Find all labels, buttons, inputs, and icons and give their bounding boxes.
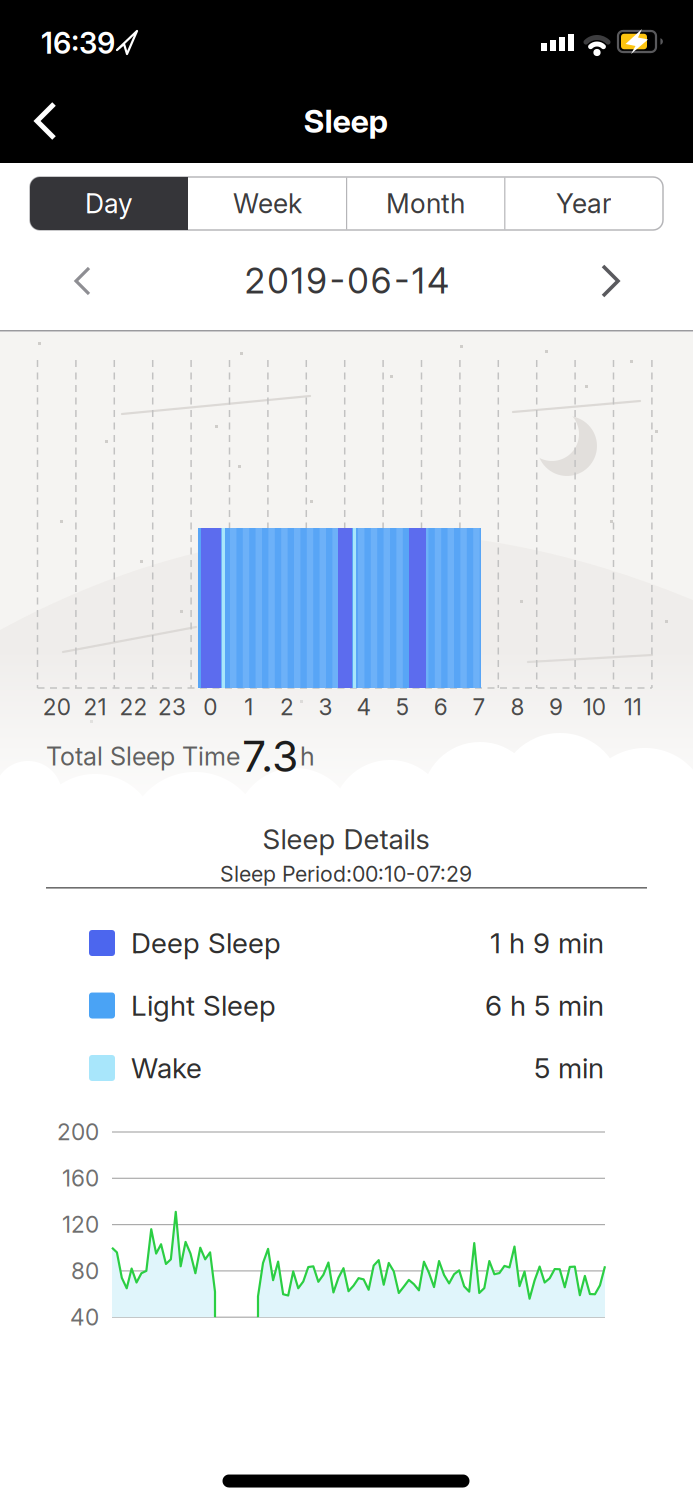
staticText: Light Sleep bbox=[131, 989, 276, 1022]
button[interactable]: Year bbox=[0, 0, 693, 1500]
button[interactable] bbox=[0, 0, 693, 1500]
staticText: 0 bbox=[203, 694, 217, 720]
staticText: h bbox=[300, 741, 315, 771]
staticText: 11 bbox=[624, 694, 642, 720]
staticText: Wake bbox=[131, 1051, 202, 1084]
button[interactable] bbox=[0, 0, 60, 163]
staticText: Deep Sleep bbox=[131, 926, 281, 959]
staticText: Sleep Details bbox=[262, 822, 429, 855]
staticText: 22 bbox=[119, 694, 147, 720]
staticText: 40 bbox=[70, 1304, 99, 1330]
staticText: 5 bbox=[396, 694, 409, 720]
staticText: 7 bbox=[473, 694, 486, 720]
staticText: 23 bbox=[158, 694, 186, 720]
staticText: 16:39 bbox=[41, 26, 115, 60]
button[interactable] bbox=[0, 0, 50, 50]
staticText: Total Sleep Time bbox=[46, 741, 240, 771]
staticText: 6 h 5 min bbox=[485, 989, 604, 1022]
button[interactable] bbox=[0, 0, 50, 50]
staticText: Sleep bbox=[303, 102, 388, 140]
staticText: 5 min bbox=[534, 1051, 604, 1084]
staticText: Week bbox=[233, 188, 302, 219]
staticText: Year bbox=[556, 188, 612, 219]
staticText: 21 bbox=[84, 694, 107, 720]
staticText: 20 bbox=[43, 694, 71, 720]
staticText: 4 bbox=[356, 694, 371, 720]
staticText: 2 bbox=[280, 694, 294, 720]
staticText: 3 bbox=[318, 694, 332, 720]
staticText: 1 h 9 min bbox=[490, 926, 604, 959]
staticText: 160 bbox=[62, 1165, 99, 1192]
button[interactable]: Week bbox=[0, 0, 693, 1500]
staticText: 2019-06-14 bbox=[245, 261, 449, 301]
staticText: 9 bbox=[549, 694, 563, 720]
button[interactable]: Day bbox=[0, 0, 693, 1500]
staticText: 7.3 bbox=[242, 731, 298, 781]
staticText: 6 bbox=[434, 694, 448, 720]
staticText: Month bbox=[386, 188, 465, 219]
staticText: 10 bbox=[583, 694, 606, 720]
staticText: 120 bbox=[62, 1211, 99, 1238]
staticText: 200 bbox=[57, 1119, 99, 1145]
staticText: 8 bbox=[510, 694, 524, 720]
staticText: 1 bbox=[244, 694, 253, 720]
button[interactable]: Month bbox=[0, 0, 693, 1500]
staticText: Sleep Period:00:10-07:29 bbox=[220, 861, 472, 887]
staticText: 80 bbox=[71, 1257, 99, 1284]
staticText: Day bbox=[85, 188, 133, 219]
